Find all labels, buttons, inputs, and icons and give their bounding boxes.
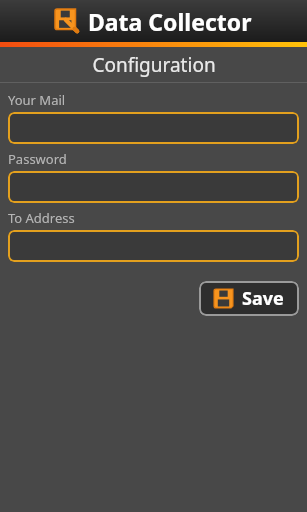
button[interactable]: Save (199, 281, 299, 316)
button[interactable] (8, 112, 299, 144)
button[interactable] (8, 171, 299, 203)
staticText: Data Collector (88, 6, 252, 37)
staticText: Password (8, 150, 67, 168)
staticText: To Address (8, 209, 75, 227)
staticText: Configuration (92, 52, 216, 78)
button[interactable] (8, 230, 299, 262)
staticText: Save (242, 286, 284, 311)
staticText: Your Mail (8, 91, 66, 109)
